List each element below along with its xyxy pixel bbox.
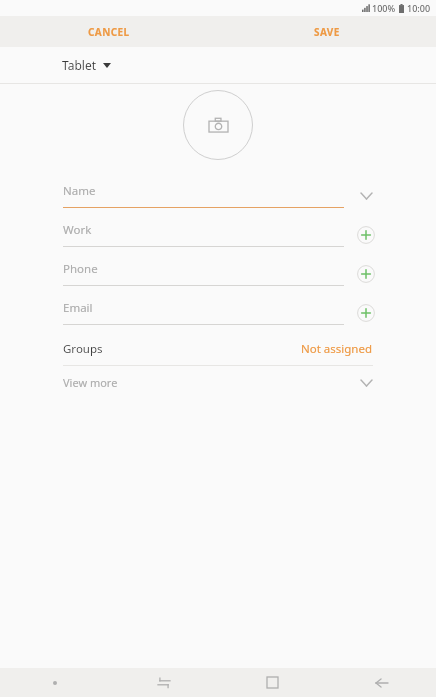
button[interactable]: Email <box>0 293 436 332</box>
staticText: View more <box>63 375 118 390</box>
button[interactable]: Add Phone <box>352 260 380 288</box>
staticText: Groups <box>63 341 103 357</box>
button[interactable]: Expand name <box>352 182 380 210</box>
button[interactable]: CANCEL <box>0 16 218 47</box>
staticText: Email <box>63 300 93 316</box>
button[interactable]: Work <box>0 215 436 254</box>
button[interactable]: View more <box>0 366 436 399</box>
button[interactable]: Back <box>327 668 436 697</box>
button[interactable]: Menu indicator <box>0 668 109 697</box>
button[interactable]: Add photo <box>183 90 253 160</box>
staticText: Work <box>63 222 92 238</box>
button[interactable]: Home <box>218 668 327 697</box>
button[interactable]: Add Email <box>352 299 380 327</box>
button[interactable]: Phone <box>0 254 436 293</box>
staticText: SAVE <box>314 25 340 39</box>
staticText: Name <box>63 183 96 199</box>
staticText: Phone <box>63 261 98 277</box>
button[interactable]: Groups <box>0 332 436 366</box>
button[interactable]: Tablet <box>56 53 117 77</box>
button[interactable]: Add Work <box>352 221 380 249</box>
staticText: Tablet <box>62 57 97 73</box>
staticText: CANCEL <box>88 25 130 39</box>
button[interactable]: SAVE <box>218 16 436 47</box>
staticText: 10:00 <box>407 2 431 14</box>
staticText: Not assigned <box>301 341 373 357</box>
button[interactable]: Name <box>0 176 436 215</box>
staticText: 100% <box>372 2 396 14</box>
button[interactable]: Recents <box>109 668 218 697</box>
